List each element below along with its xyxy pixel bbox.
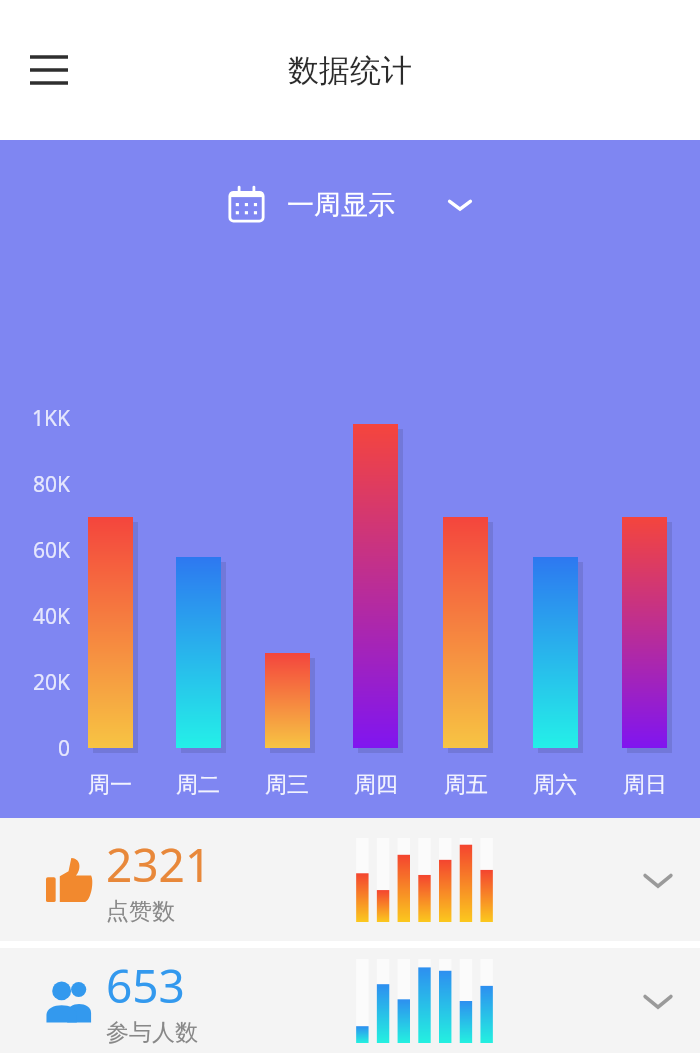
button[interactable]: 2321 [0, 818, 700, 941]
staticText: 653 [106, 954, 185, 1017]
button[interactable]: 653 [0, 948, 700, 1053]
staticText: 参与人数 [106, 1018, 198, 1047]
staticText: 0 [0, 734, 70, 763]
button[interactable]: Menu [16, 37, 82, 103]
staticText: 1KK [0, 404, 70, 433]
button[interactable]: Expand [630, 973, 686, 1029]
button[interactable]: Expand [630, 852, 686, 908]
staticText: 周一 [70, 771, 150, 799]
staticText: 周三 [247, 771, 327, 799]
staticText: 40K [0, 602, 70, 631]
button[interactable]: 详细信息 [452, 850, 661, 916]
staticText: 2321 [106, 833, 212, 896]
staticText: 60K [0, 536, 70, 565]
staticText: 数据统计 [288, 51, 412, 90]
staticText: 今日步数 [34, 911, 122, 939]
staticText: 周六 [515, 771, 595, 799]
staticText: 69863 [34, 834, 189, 908]
button[interactable]: 一周显示 [228, 186, 473, 223]
staticText: 周日 [605, 771, 685, 799]
staticText: 周四 [336, 771, 416, 799]
staticText: 20K [0, 668, 70, 697]
staticText: 80K [0, 470, 70, 499]
staticText: 一周显示 [287, 188, 395, 222]
staticText: 周五 [426, 771, 506, 799]
staticText: 周二 [158, 771, 238, 799]
staticText: 点赞数 [106, 897, 175, 926]
